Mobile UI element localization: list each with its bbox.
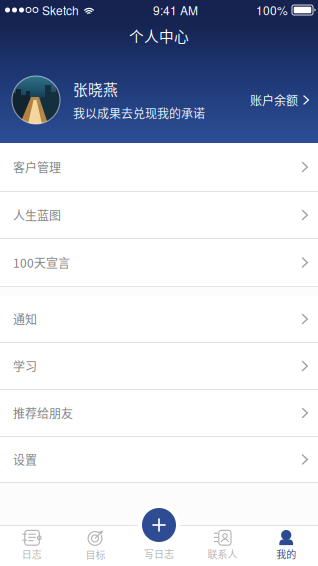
staticText: 写日志 [144,546,174,561]
button[interactable]: 100天宣言 [0,239,318,286]
staticText: 账户余额 [250,91,298,109]
button[interactable]: 客户管理 [0,143,318,191]
staticText: 设置 [13,451,37,468]
button[interactable]: 人生蓝图 [0,192,318,238]
staticText: 9:41 AM [153,1,198,19]
staticText: 目标 [85,547,105,562]
button[interactable]: 目标 [64,525,127,566]
button[interactable]: 写日志 [138,504,180,546]
staticText: 通知 [13,310,37,328]
staticText: 学习 [13,357,37,375]
button[interactable]: 学习 [0,343,318,389]
button[interactable]: 写日志 [127,525,191,566]
button[interactable]: 账户余额 [250,91,309,109]
staticText: 联系人 [208,547,238,561]
staticText: 我的 [276,547,296,561]
button[interactable]: 通知 [0,296,318,342]
button[interactable]: 我的 [254,525,318,566]
button[interactable]: 推荐给朋友 [0,390,318,436]
staticText: 个人中心 [129,25,189,46]
staticText: 推荐给朋友 [13,404,73,422]
staticText: 日志 [22,547,42,561]
button[interactable]: 联系人 [191,525,254,566]
staticText: 100天宣言 [13,254,70,271]
staticText: 客户管理 [13,158,61,176]
staticText: 100% [256,1,288,19]
staticText: 我以成果去兑现我的承诺 [73,104,205,122]
button[interactable]: 设置 [0,437,318,482]
staticText: 张晓燕 [73,78,118,99]
staticText: Sketch [42,1,79,19]
staticText: 人生蓝图 [13,206,61,224]
button[interactable]: 日志 [0,525,64,566]
